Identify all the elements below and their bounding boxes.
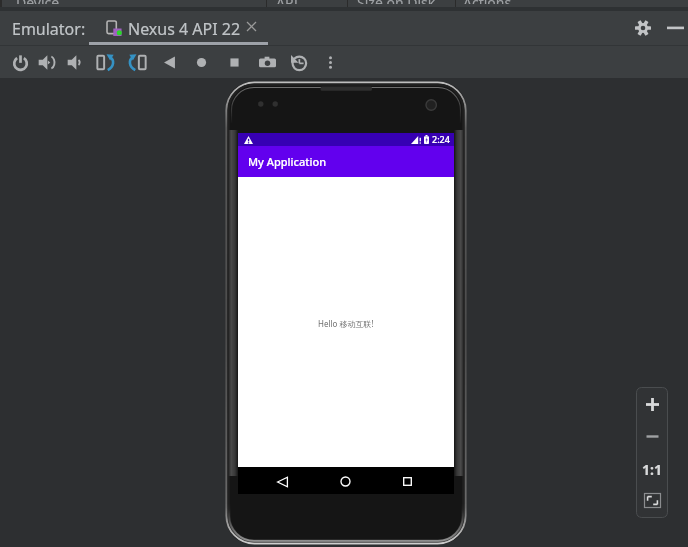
button[interactable]: Back: [156, 49, 182, 75]
button[interactable]: Home: [335, 471, 356, 492]
staticText: Nexus 4 API 22: [128, 18, 241, 40]
staticText: Emulator:: [12, 18, 86, 40]
button[interactable]: Volume down: [62, 49, 88, 75]
button[interactable]: Back: [272, 471, 293, 492]
staticText: 2:24: [432, 133, 450, 145]
button[interactable]: Home: [188, 49, 214, 75]
button[interactable]: Rotate right: [124, 49, 150, 75]
button[interactable]: 1:1: [639, 456, 665, 482]
button[interactable]: Volume up: [33, 49, 59, 75]
button[interactable]: Zoom in: [639, 391, 665, 417]
button[interactable]: Power: [7, 49, 33, 75]
button[interactable]: Nexus 4 API 22: [89, 11, 268, 46]
staticText: Size on Disk: [357, 0, 436, 4]
button[interactable]: Zoom out: [639, 423, 665, 449]
button[interactable]: Recents: [397, 471, 418, 492]
button[interactable]: Screenshot: [254, 49, 280, 75]
button[interactable]: Minimize: [663, 16, 687, 40]
staticText: API: [276, 0, 299, 4]
staticText: Actions: [463, 0, 512, 4]
button[interactable]: Fit to screen: [639, 487, 665, 513]
staticText: Hello 移动互联!: [318, 318, 374, 329]
staticText: 1:1: [642, 460, 662, 479]
staticText: My Application: [248, 154, 327, 169]
button[interactable]: History: [285, 49, 311, 75]
button[interactable]: Settings: [631, 16, 655, 40]
staticText: Device: [16, 0, 60, 4]
button[interactable]: Rotate left: [92, 49, 118, 75]
button[interactable]: Overview: [221, 49, 247, 75]
button[interactable]: More options: [317, 49, 343, 75]
